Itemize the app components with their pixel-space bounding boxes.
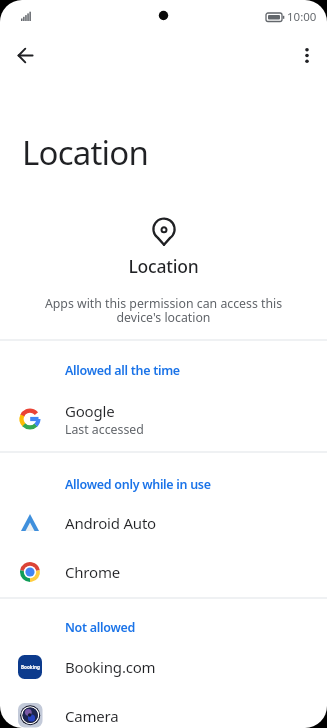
button[interactable]: Chrome: [0, 547, 327, 596]
staticText: Allowed all the time: [65, 362, 180, 379]
staticText: Last accessed: [65, 421, 144, 438]
button[interactable]: Android Auto: [0, 498, 327, 547]
staticText: 10:00: [287, 9, 317, 25]
staticText: Apps with this permission can access thi…: [0, 295, 327, 326]
button[interactable]: [291, 40, 322, 71]
staticText: Camera: [65, 706, 119, 726]
button[interactable]: Camera: [0, 691, 327, 728]
staticText: Booking: [21, 664, 40, 670]
staticText: Location: [22, 130, 148, 175]
staticText: Booking.com: [65, 657, 156, 677]
button[interactable]: [10, 40, 41, 71]
button[interactable]: Booking: [0, 642, 327, 691]
button[interactable]: Google: [0, 394, 327, 444]
staticText: Allowed only while in use: [65, 476, 211, 493]
staticText: Chrome: [65, 562, 121, 582]
staticText: Google: [65, 401, 115, 421]
staticText: Android Auto: [65, 513, 156, 533]
staticText: Not allowed: [65, 619, 136, 636]
staticText: Location: [0, 254, 327, 278]
